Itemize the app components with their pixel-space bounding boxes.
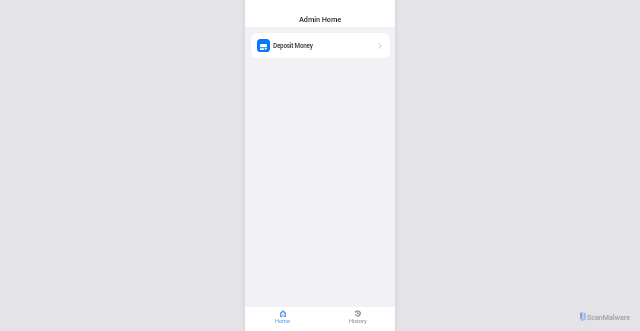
button[interactable]: Home (245, 307, 320, 331)
staticText: ScanMalware (587, 313, 631, 321)
staticText: History (349, 318, 367, 324)
staticText: Deposit Money (273, 42, 313, 50)
button[interactable]: Deposit Money (251, 33, 390, 58)
staticText: Admin Home (299, 15, 342, 24)
staticText: Home (275, 318, 290, 324)
button[interactable]: History (320, 307, 395, 331)
